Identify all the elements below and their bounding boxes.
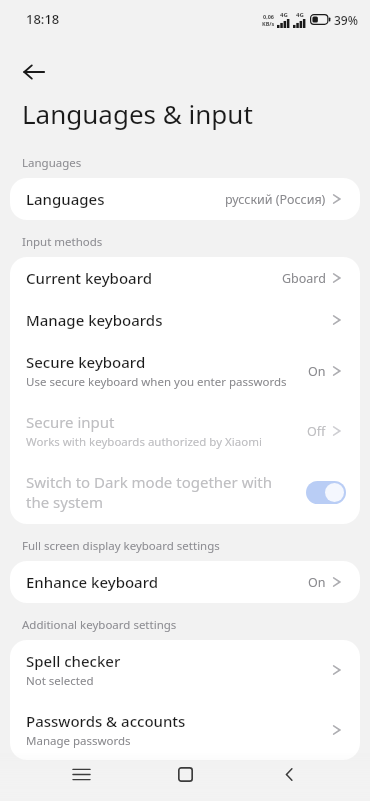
staticText: Full screen display keyboard settings bbox=[22, 538, 220, 554]
staticText: 0,06 bbox=[263, 13, 275, 20]
button[interactable]: Languages bbox=[10, 178, 360, 220]
staticText: On bbox=[308, 363, 326, 380]
staticText: Not selected bbox=[26, 673, 94, 689]
staticText: Languages & input bbox=[22, 96, 253, 131]
button[interactable]: Enhance keyboard bbox=[10, 561, 360, 603]
staticText: Languages bbox=[22, 155, 82, 171]
button[interactable]: Secure input bbox=[10, 401, 360, 461]
staticText: Spell checker bbox=[26, 651, 121, 671]
button[interactable]: Passwords & accounts bbox=[10, 700, 360, 760]
staticText: Off bbox=[307, 423, 326, 440]
staticText: 18:18 bbox=[26, 10, 60, 28]
button[interactable]: Home bbox=[162, 753, 208, 795]
staticText: Use secure keyboard when you enter passw… bbox=[26, 374, 287, 390]
button[interactable]: Back bbox=[266, 753, 312, 795]
staticText: русский (Россия) bbox=[225, 191, 326, 208]
staticText: Current keyboard bbox=[26, 268, 152, 288]
button[interactable]: Secure keyboard bbox=[10, 341, 360, 401]
staticText: Enhance keyboard bbox=[26, 572, 159, 592]
staticText: Manage passwords bbox=[26, 733, 131, 749]
staticText: KB/s bbox=[262, 20, 275, 27]
staticText: Input methods bbox=[22, 234, 103, 250]
button[interactable]: Back bbox=[12, 50, 56, 94]
button[interactable]: Spell checker bbox=[10, 640, 360, 700]
button[interactable]: Manage keyboards bbox=[10, 299, 360, 341]
staticText: Manage keyboards bbox=[26, 310, 163, 330]
button[interactable]: Switch to Dark mode together with the sy… bbox=[10, 461, 360, 524]
staticText: 4G bbox=[296, 11, 304, 19]
staticText: On bbox=[308, 574, 326, 591]
staticText: Passwords & accounts bbox=[26, 711, 186, 731]
staticText: 39% bbox=[334, 12, 358, 28]
staticText: 4G bbox=[280, 11, 288, 19]
staticText: Secure input bbox=[26, 412, 115, 432]
staticText: Switch to Dark mode together with the sy… bbox=[26, 472, 294, 512]
staticText: Languages bbox=[26, 189, 105, 209]
staticText: Additional keyboard settings bbox=[22, 617, 177, 633]
staticText: Gboard bbox=[282, 270, 326, 287]
staticText: Works with keyboards authorized by Xiaom… bbox=[26, 434, 262, 450]
other: Switch to Dark mode toggle bbox=[306, 481, 346, 504]
staticText: Secure keyboard bbox=[26, 352, 146, 372]
button[interactable]: Current keyboard bbox=[10, 257, 360, 299]
button[interactable]: Recent apps bbox=[58, 753, 104, 795]
